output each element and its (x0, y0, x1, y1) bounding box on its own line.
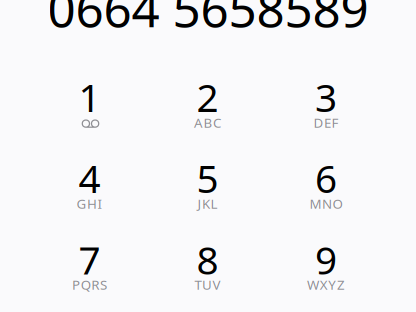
staticText: TUV (194, 276, 221, 293)
staticText: ABC (194, 114, 221, 131)
button[interactable]: 3 DEF (267, 59, 386, 137)
staticText: 7 (78, 234, 100, 285)
staticText: 1 (78, 71, 100, 123)
button[interactable]: 7 PQRS (30, 221, 149, 299)
staticText: JKL (197, 195, 218, 212)
staticText: 3 (315, 71, 337, 123)
button[interactable]: 5 JKL (148, 140, 267, 218)
staticText: GHI (76, 195, 103, 212)
staticText: 2 (196, 71, 218, 123)
staticText: DEF (313, 114, 339, 131)
staticText: 4 (78, 152, 100, 204)
staticText: 8 (196, 234, 218, 285)
staticText: 9 (315, 234, 337, 285)
staticText: 6 (315, 152, 337, 204)
button[interactable]: 1 voicemail (30, 59, 149, 137)
staticText: WXYZ (307, 276, 345, 293)
button[interactable]: 6 MNO (267, 140, 386, 218)
staticText: 5 (196, 152, 218, 204)
button[interactable]: 9 WXYZ (267, 221, 386, 299)
staticText: PQRS (72, 276, 107, 293)
staticText: 0664 5658589 (47, 0, 368, 41)
button[interactable]: 4 GHI (30, 140, 149, 218)
button[interactable]: 2 ABC (148, 59, 267, 137)
staticText: MNO (309, 195, 343, 212)
button[interactable]: 8 TUV (148, 221, 267, 299)
